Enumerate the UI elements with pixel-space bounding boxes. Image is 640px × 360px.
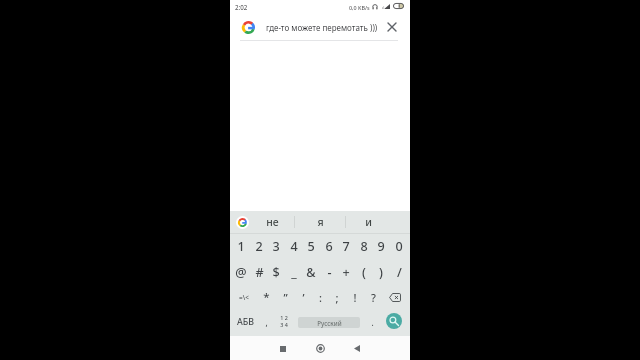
button[interactable]: ”	[276, 285, 294, 309]
button[interactable]: Clear	[383, 18, 401, 36]
staticText: &	[306, 264, 316, 281]
staticText: 2:02	[235, 3, 248, 11]
button[interactable]: Recents	[274, 336, 292, 360]
button[interactable]: и	[346, 211, 390, 233]
staticText: ”	[283, 290, 288, 305]
button[interactable]: Numbers	[273, 309, 294, 336]
button[interactable]: &	[302, 259, 320, 285]
staticText: $	[272, 264, 280, 281]
staticText: @	[235, 264, 247, 281]
button[interactable]: 3	[267, 234, 285, 259]
staticText: =\<	[239, 293, 249, 302]
button[interactable]: Backspace	[383, 285, 407, 309]
staticText: 2	[255, 238, 263, 255]
button[interactable]: =\<	[232, 285, 256, 309]
button[interactable]: 0	[390, 234, 408, 259]
staticText: 9	[377, 238, 385, 255]
staticText: не	[266, 215, 279, 229]
staticText: 6	[325, 238, 333, 255]
button[interactable]: @	[232, 259, 250, 285]
button[interactable]: 8	[355, 234, 373, 259]
staticText: .	[371, 317, 374, 328]
staticText: я	[317, 215, 324, 229]
button[interactable]: АБВ	[231, 308, 259, 335]
staticText: 7	[342, 238, 350, 255]
staticText: :	[319, 290, 322, 305]
staticText: 4	[290, 238, 298, 255]
button[interactable]: 2	[250, 234, 268, 259]
button[interactable]: 6	[320, 234, 338, 259]
staticText: #	[255, 264, 264, 281]
button[interactable]: +	[337, 259, 355, 285]
button[interactable]: ,	[259, 309, 274, 336]
button[interactable]: 5	[302, 234, 320, 259]
button[interactable]: Search	[386, 313, 402, 329]
button[interactable]: ?	[364, 285, 382, 309]
staticText: ?	[371, 290, 376, 305]
button[interactable]: ’	[294, 285, 312, 309]
staticText: ;	[335, 290, 339, 305]
button[interactable]: )	[372, 259, 390, 285]
button[interactable]: 9	[372, 234, 390, 259]
staticText: +	[342, 264, 350, 281]
button[interactable]: Русский	[298, 317, 360, 328]
button[interactable]: #	[250, 259, 268, 285]
staticText: !	[353, 290, 357, 305]
staticText: -	[327, 264, 332, 281]
staticText: 0	[395, 238, 403, 255]
button[interactable]: $	[267, 259, 285, 285]
staticText: где-то можете перемотать )))	[266, 22, 378, 33]
button[interactable]: Google	[234, 211, 250, 233]
staticText: )	[379, 264, 383, 281]
button[interactable]: Home	[311, 336, 329, 360]
staticText: _	[291, 264, 297, 281]
button[interactable]: 7	[337, 234, 355, 259]
button[interactable]: _	[285, 259, 303, 285]
staticText: *	[263, 289, 270, 305]
button[interactable]: -	[320, 259, 338, 285]
button[interactable]: не	[250, 211, 294, 233]
staticText: 3	[272, 238, 280, 255]
button[interactable]: :	[311, 285, 329, 309]
staticText: 5	[307, 238, 315, 255]
staticText: (	[362, 264, 366, 281]
staticText: 1	[237, 238, 245, 255]
button[interactable]: (	[355, 259, 373, 285]
staticText: АБВ	[237, 316, 254, 328]
staticText: /	[397, 264, 402, 281]
button[interactable]: я	[295, 211, 346, 233]
button[interactable]: ;	[328, 285, 346, 309]
button[interactable]: *	[257, 285, 275, 309]
staticText: 0,0 KB/s	[349, 4, 370, 11]
staticText: Русский	[317, 319, 342, 327]
staticText: 8	[360, 238, 368, 255]
staticText: и	[365, 215, 372, 229]
button[interactable]: 4	[285, 234, 303, 259]
button[interactable]: /	[390, 259, 408, 285]
button[interactable]: .	[365, 309, 380, 336]
staticText: ’	[302, 290, 305, 305]
button[interactable]: Back	[348, 336, 366, 360]
button[interactable]: !	[346, 285, 364, 309]
staticText: ,	[265, 317, 268, 328]
staticText: 1 2	[280, 314, 288, 321]
staticText: 3 4	[280, 321, 288, 328]
button[interactable]: 1	[232, 234, 250, 259]
